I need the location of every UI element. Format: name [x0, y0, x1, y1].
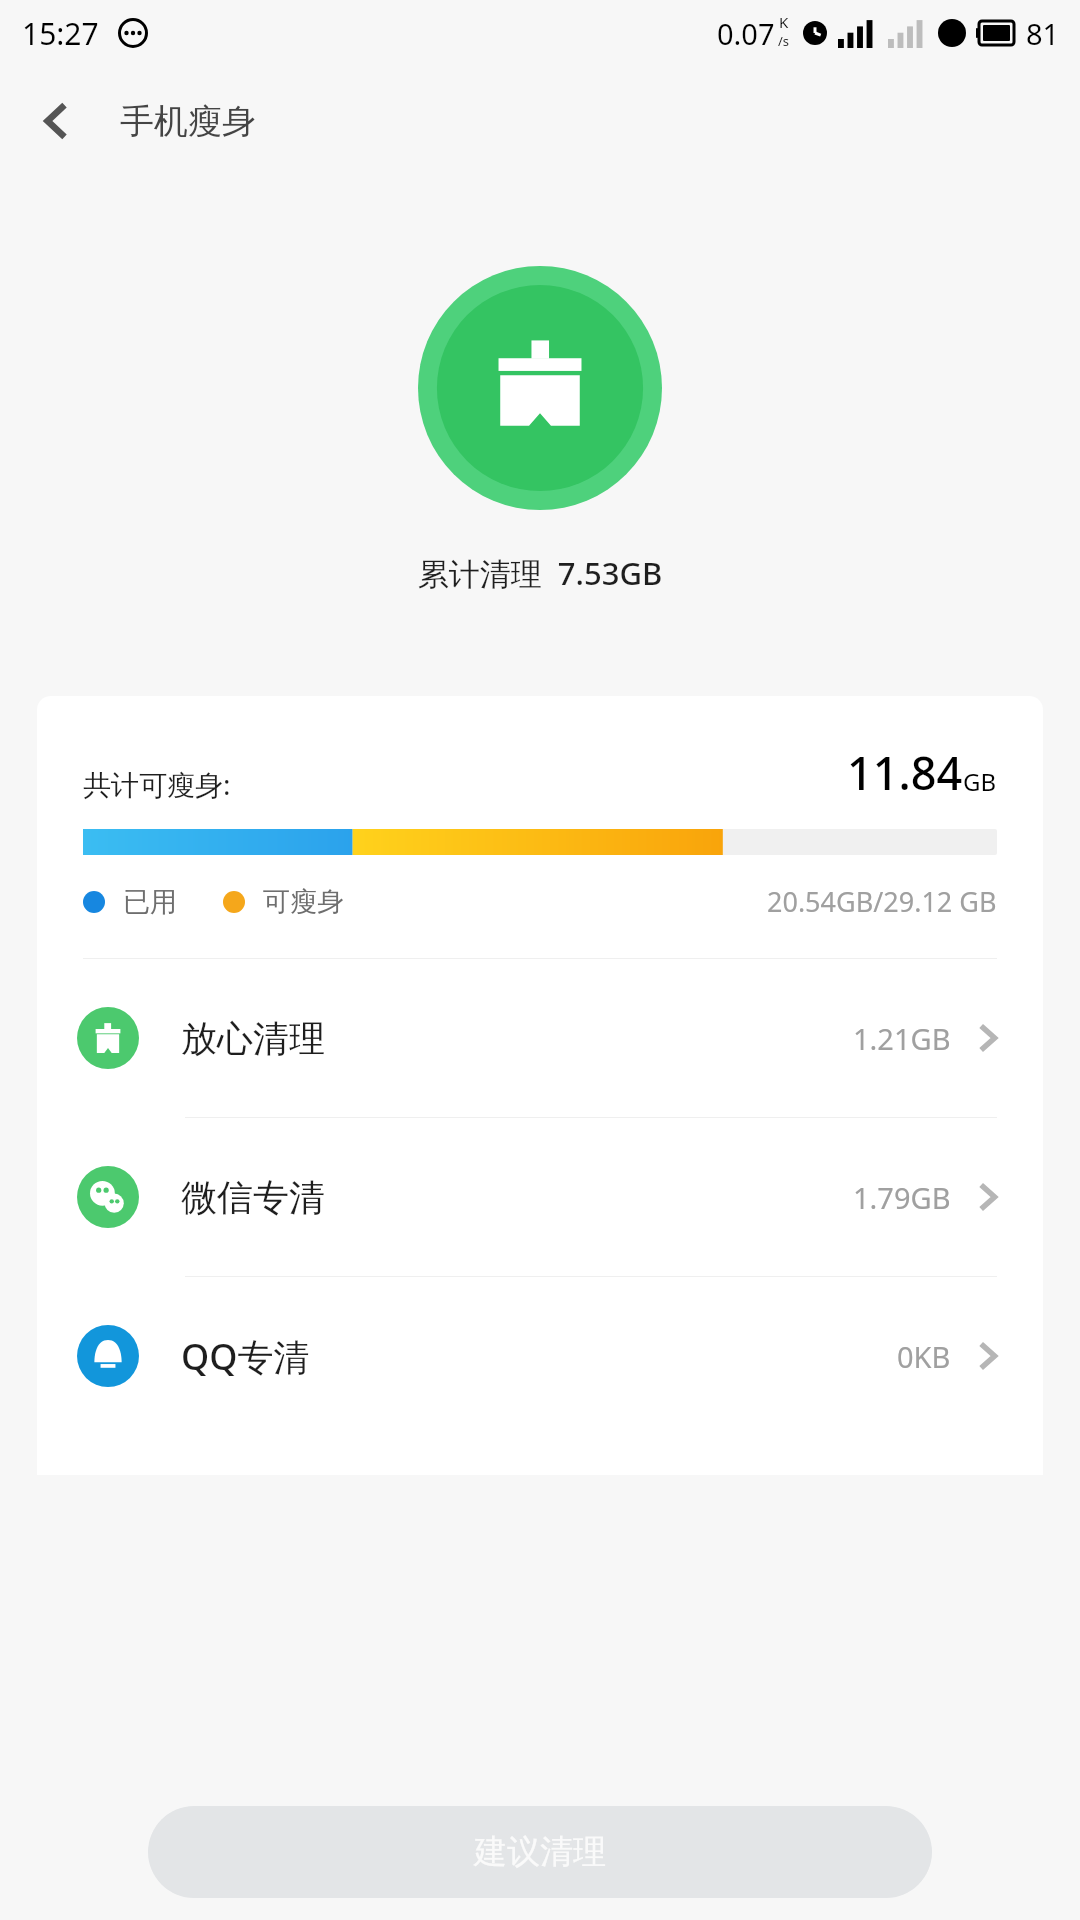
staticText: QQ专清	[181, 1332, 310, 1381]
staticText: 手机瘦身	[120, 100, 256, 143]
staticText: 0KB	[897, 1337, 951, 1376]
staticText: 累计清理 7.53GB	[0, 552, 1080, 594]
staticText: 20.54GB/29.12 GB	[767, 883, 997, 920]
staticText: 11.84	[847, 742, 963, 803]
staticText: 0.07	[717, 14, 775, 53]
button[interactable]: QQ专清	[37, 1277, 1043, 1435]
staticText: 81	[1026, 14, 1060, 53]
staticText: 放心清理	[181, 1016, 325, 1061]
button[interactable]: 建议清理	[148, 1806, 932, 1898]
staticText: /s	[778, 32, 790, 50]
staticText: 可瘦身	[263, 885, 344, 919]
staticText: 共计可瘦身:	[83, 765, 231, 803]
staticText: 15:27	[22, 13, 99, 54]
button[interactable]: Back	[20, 85, 92, 157]
button[interactable]: 微信专清	[37, 1118, 1043, 1276]
button[interactable]: 放心清理	[37, 959, 1043, 1117]
staticText: 1.21GB	[853, 1019, 951, 1058]
staticText: 已用	[123, 885, 177, 919]
staticText: GB	[963, 765, 997, 798]
staticText: 1.79GB	[853, 1178, 951, 1217]
staticText: 微信专清	[181, 1175, 325, 1220]
staticText: 建议清理	[474, 1831, 606, 1873]
staticText: K	[779, 12, 789, 32]
